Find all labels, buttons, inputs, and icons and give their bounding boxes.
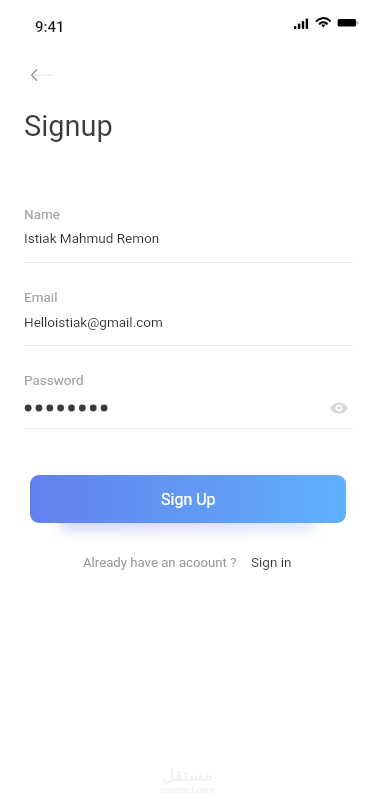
staticText: Istiak Mahmud Remon xyxy=(24,230,160,246)
staticText: mostaql.com xyxy=(161,785,214,796)
staticText: Helloistiak@gmail.com xyxy=(24,314,163,330)
button[interactable]: Sign in xyxy=(251,554,292,570)
button[interactable]: Back xyxy=(20,53,64,97)
staticText: مستقل xyxy=(162,765,213,785)
button[interactable]: Sign Up xyxy=(30,475,346,523)
staticText: Email xyxy=(24,289,58,305)
staticText: Already have an acoount ? xyxy=(83,555,237,570)
staticText: Name xyxy=(24,206,60,222)
staticText: Sign in xyxy=(251,554,292,570)
button[interactable]: Show password xyxy=(325,399,353,417)
staticText: Password xyxy=(24,372,84,388)
staticText: 9:41 xyxy=(35,18,65,36)
staticText: Sign Up xyxy=(161,490,216,509)
staticText: Signup xyxy=(24,109,113,143)
